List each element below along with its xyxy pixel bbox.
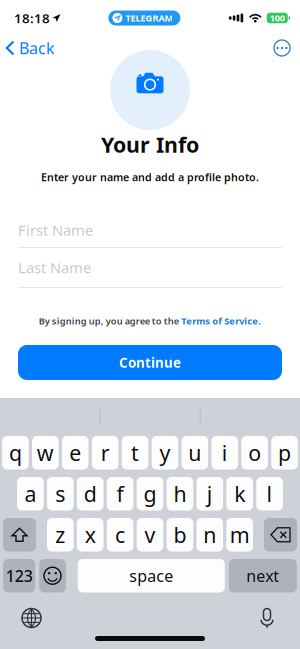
staticText: Back bbox=[19, 37, 55, 59]
button[interactable]: i bbox=[211, 436, 238, 469]
staticText: u bbox=[188, 439, 201, 467]
button[interactable]: 123 bbox=[3, 559, 35, 592]
staticText: 123 bbox=[6, 565, 33, 586]
button[interactable]: Emoji bbox=[39, 559, 66, 592]
staticText: s bbox=[55, 480, 65, 508]
staticText: Enter your name and add a profile photo. bbox=[41, 170, 259, 184]
staticText: y bbox=[159, 439, 170, 467]
staticText: r bbox=[101, 439, 110, 467]
staticText: w bbox=[37, 439, 54, 467]
staticText: p bbox=[278, 439, 291, 467]
staticText: m bbox=[230, 521, 250, 549]
button[interactable]: f bbox=[107, 477, 133, 510]
staticText: Last Name bbox=[18, 258, 91, 277]
button[interactable]: Back bbox=[0, 35, 55, 61]
staticText: i bbox=[222, 439, 228, 467]
button[interactable]: Shift bbox=[3, 518, 36, 551]
button[interactable]: x bbox=[77, 518, 103, 551]
button[interactable]: t bbox=[122, 436, 148, 469]
staticText: TELEGRAM bbox=[125, 12, 173, 24]
button[interactable]: next bbox=[229, 559, 297, 592]
button[interactable]: m bbox=[226, 518, 253, 551]
button[interactable]: z bbox=[47, 518, 74, 551]
button[interactable]: Dictate bbox=[258, 608, 276, 628]
button[interactable]: Continue bbox=[18, 345, 282, 380]
button[interactable]: n bbox=[196, 518, 223, 551]
staticText: c bbox=[115, 521, 125, 549]
button[interactable]: y bbox=[152, 436, 178, 469]
button[interactable]: Terms of Service. bbox=[181, 315, 261, 327]
staticText: o bbox=[248, 439, 261, 467]
button[interactable]: l bbox=[256, 477, 283, 510]
staticText: t bbox=[131, 439, 139, 467]
button[interactable]: o bbox=[241, 436, 268, 469]
staticText: k bbox=[234, 480, 245, 508]
button[interactable]: s bbox=[47, 477, 74, 510]
button[interactable]: h bbox=[167, 477, 193, 510]
button[interactable]: c bbox=[107, 518, 133, 551]
staticText: z bbox=[55, 521, 65, 549]
button[interactable]: q bbox=[2, 436, 29, 469]
staticText: By signing up, you agree to the bbox=[39, 315, 179, 327]
button[interactable]: r bbox=[92, 436, 118, 469]
button[interactable]: Delete bbox=[264, 518, 297, 551]
button[interactable]: k bbox=[226, 477, 253, 510]
staticText: 18:18 bbox=[14, 9, 50, 27]
staticText: Continue bbox=[119, 354, 181, 371]
button[interactable]: d bbox=[77, 477, 103, 510]
button[interactable]: v bbox=[137, 518, 163, 551]
staticText: g bbox=[143, 480, 156, 508]
staticText: a bbox=[24, 480, 36, 508]
staticText: Terms of Service. bbox=[181, 315, 261, 327]
button[interactable]: Next keyboard bbox=[22, 608, 41, 627]
staticText: b bbox=[173, 521, 186, 549]
staticText: f bbox=[117, 480, 124, 508]
button[interactable]: e bbox=[62, 436, 89, 469]
button[interactable]: b bbox=[167, 518, 193, 551]
staticText: h bbox=[173, 480, 186, 508]
staticText: Your Info bbox=[101, 130, 199, 159]
staticText: v bbox=[144, 521, 155, 549]
staticText: next bbox=[246, 565, 279, 586]
staticText: n bbox=[203, 521, 216, 549]
button[interactable]: p bbox=[271, 436, 298, 469]
staticText: l bbox=[267, 480, 273, 508]
button[interactable]: j bbox=[196, 477, 223, 510]
button[interactable]: a bbox=[17, 477, 44, 510]
staticText: space bbox=[129, 565, 173, 586]
button[interactable]: More options bbox=[274, 35, 300, 61]
staticText: j bbox=[207, 480, 213, 508]
button[interactable]: u bbox=[182, 436, 208, 469]
staticText: x bbox=[85, 521, 96, 549]
button[interactable]: g bbox=[137, 477, 163, 510]
button[interactable]: w bbox=[32, 436, 59, 469]
staticText: e bbox=[69, 439, 81, 467]
button[interactable]: space bbox=[78, 559, 225, 592]
staticText: q bbox=[9, 439, 22, 467]
staticText: First Name bbox=[18, 220, 93, 240]
staticText: 100 bbox=[270, 12, 285, 24]
staticText: d bbox=[84, 480, 97, 508]
